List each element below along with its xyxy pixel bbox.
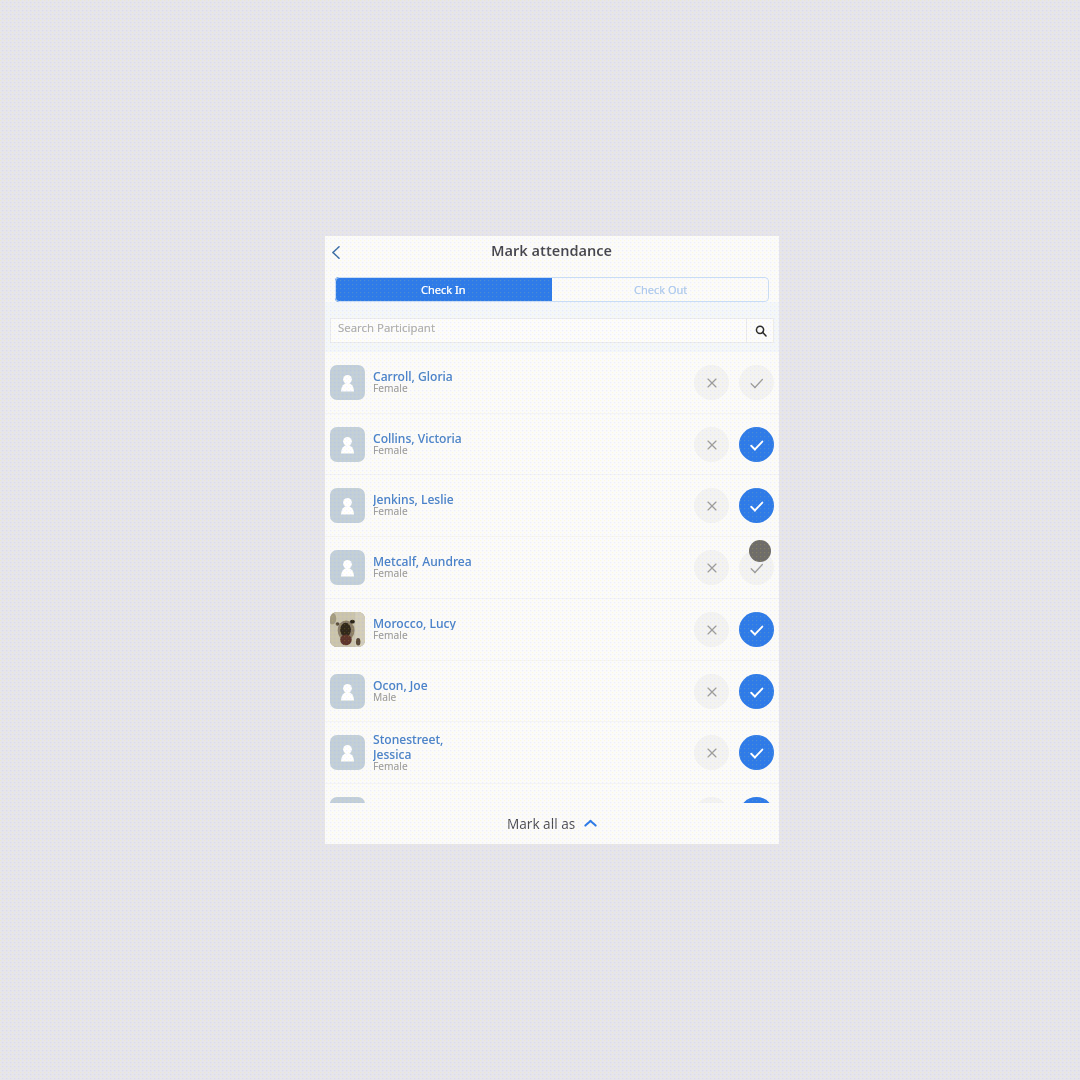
button[interactable]: Morocco, Lucy <box>325 599 779 660</box>
staticText: Morocco, Lucy <box>373 615 456 630</box>
button[interactable]: Mark absent <box>694 550 729 585</box>
staticText: Male <box>373 690 397 704</box>
button[interactable]: Mark present <box>739 735 774 770</box>
button[interactable]: Mark all as <box>325 803 779 844</box>
button[interactable]: Jenkins, Leslie <box>325 475 779 536</box>
staticText: Female <box>373 628 408 642</box>
button[interactable]: Metcalf, Aundrea <box>325 537 779 598</box>
staticText: Thomas, Amy <box>373 800 452 803</box>
staticText: Female <box>373 759 408 773</box>
button[interactable]: Mark present <box>739 674 774 709</box>
button[interactable]: Stonestreet, <box>325 722 779 783</box>
button[interactable]: Mark present <box>739 550 774 585</box>
button[interactable]: Mark absent <box>694 797 729 803</box>
staticText: Collins, Victoria <box>373 430 462 445</box>
staticText: Metcalf, Aundrea <box>373 553 472 568</box>
button[interactable]: Collins, Victoria <box>325 414 779 475</box>
button[interactable]: Mark absent <box>694 488 729 523</box>
button[interactable]: Back <box>325 237 351 267</box>
staticText: Check Out <box>634 282 688 297</box>
button[interactable]: Mark present <box>739 797 774 803</box>
button[interactable]: Mark present <box>739 365 774 400</box>
button[interactable]: Carroll, Gloria <box>325 352 779 413</box>
button[interactable]: Mark present <box>739 427 774 462</box>
staticText: Check In <box>421 282 466 297</box>
staticText: Carroll, Gloria <box>373 368 453 383</box>
staticText: Mark attendance <box>491 240 613 260</box>
button[interactable]: Check In <box>335 277 552 302</box>
button[interactable]: Mark absent <box>694 735 729 770</box>
button[interactable]: Mark absent <box>694 674 729 709</box>
staticText: Mark all as <box>507 815 576 833</box>
button[interactable]: Mark absent <box>694 612 729 647</box>
button[interactable]: Check Out <box>552 277 769 302</box>
staticText: Female <box>373 504 408 518</box>
staticText: Search Participant <box>338 320 746 336</box>
staticText: Jessica <box>373 746 412 761</box>
button[interactable]: Search <box>747 318 774 343</box>
button[interactable]: Mark present <box>739 612 774 647</box>
staticText: Female <box>373 381 408 395</box>
button[interactable]: Ocon, Joe <box>325 661 779 722</box>
staticText: Female <box>373 566 408 580</box>
staticText: Jenkins, Leslie <box>373 491 454 506</box>
button[interactable]: Mark present <box>739 488 774 523</box>
button[interactable]: Mark absent <box>694 427 729 462</box>
button[interactable]: Thomas, Amy <box>325 784 779 803</box>
staticText: Female <box>373 443 408 457</box>
staticText: Ocon, Joe <box>373 677 428 692</box>
button[interactable]: Mark absent <box>694 365 729 400</box>
staticText: Stonestreet, <box>373 731 444 746</box>
